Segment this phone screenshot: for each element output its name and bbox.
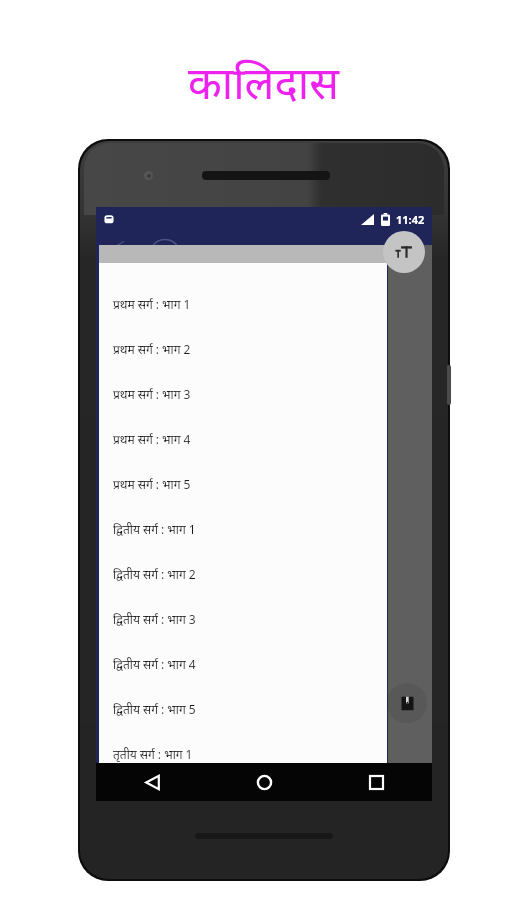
staticText: प्रथम सर्ग : भाग 1: [113, 296, 191, 312]
staticText: प्रथम सर्ग : भाग 5: [113, 476, 191, 492]
button[interactable]: Recent apps: [320, 763, 432, 801]
button[interactable]: द्वितीय सर्ग : भाग 3: [99, 596, 387, 641]
staticText: द्वितीय सर्ग : भाग 3: [113, 611, 196, 627]
button[interactable]: प्रथम सर्ग : भाग 3: [99, 371, 387, 416]
button[interactable]: द्वितीय सर्ग : भाग 5: [99, 686, 387, 731]
staticText: प्रथम सर्ग : भाग 4: [113, 431, 191, 447]
button[interactable]: Back: [96, 763, 208, 801]
button[interactable]: प्रथम सर्ग : भाग 5: [99, 461, 387, 506]
staticText: द्वितीय सर्ग : भाग 1: [113, 521, 196, 537]
staticText: प्रथम सर्ग : भाग 2: [113, 341, 191, 357]
button[interactable]: द्वितीय सर्ग : भाग 2: [99, 551, 387, 596]
button[interactable]: प्रथम सर्ग : भाग 4: [99, 416, 387, 461]
staticText: तृतीय सर्ग : भाग 1: [113, 746, 193, 762]
staticText: द्वितीय सर्ग : भाग 2: [113, 566, 196, 582]
button[interactable]: द्वितीय सर्ग : भाग 1: [99, 506, 387, 551]
staticText: 11:42: [396, 212, 425, 227]
button[interactable]: द्वितीय सर्ग : भाग 4: [99, 641, 387, 686]
button[interactable]: प्रथम सर्ग : भाग 2: [99, 326, 387, 371]
staticText: द्वितीय सर्ग : भाग 4: [113, 656, 196, 672]
button[interactable]: तृतीय सर्ग : भाग 1: [99, 731, 387, 776]
button[interactable]: Home: [208, 763, 320, 801]
button[interactable]: Bookmark: [387, 683, 427, 723]
staticText: प्रथम सर्ग : भाग 3: [113, 386, 191, 402]
staticText: द्वितीय सर्ग : भाग 5: [113, 701, 196, 717]
staticText: कालिदास: [188, 52, 339, 112]
button[interactable]: प्रथम सर्ग : भाग 1: [99, 281, 387, 326]
button[interactable]: Text size: [383, 231, 425, 273]
